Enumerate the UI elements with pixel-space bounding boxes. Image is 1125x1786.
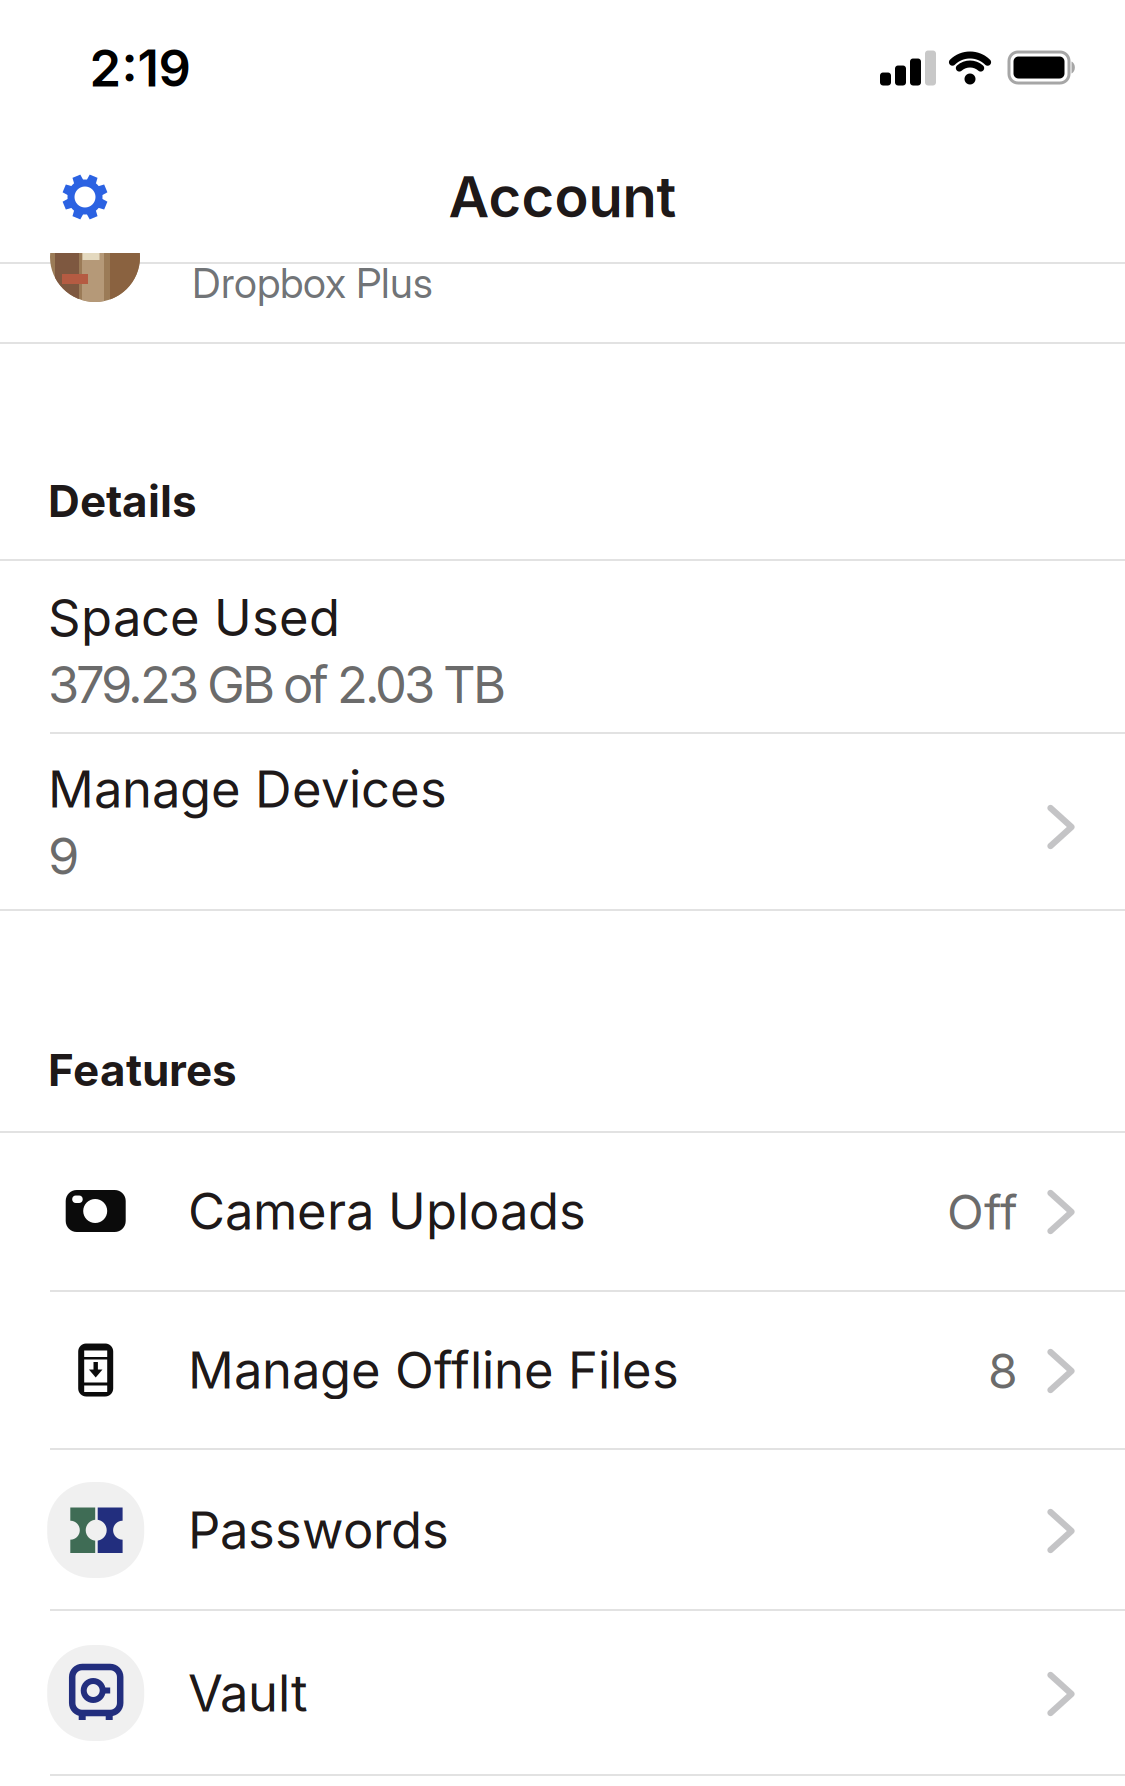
staticText: Space Used	[48, 588, 340, 647]
staticText: Camera Uploads	[188, 1181, 586, 1241]
staticText: Dropbox Plus	[192, 259, 433, 307]
staticText: Manage Devices	[48, 759, 447, 819]
staticText: Manage Offline Files	[188, 1340, 679, 1400]
button[interactable]: Settings	[45, 157, 125, 237]
staticText: Details	[48, 475, 197, 527]
staticText: Features	[48, 1044, 237, 1096]
button[interactable]: Dropbox Plus	[0, 243, 1125, 323]
staticText: 8	[988, 1343, 1018, 1399]
staticText: Passwords	[188, 1500, 449, 1560]
staticText: 9	[48, 826, 79, 886]
staticText: 379.23 GB of 2.03 TB	[48, 655, 506, 714]
staticText: Off	[947, 1184, 1018, 1240]
button[interactable]: Manage Offline Files	[0, 1292, 1125, 1450]
button[interactable]: Space Used	[0, 560, 1125, 732]
staticText: 2:19	[89, 38, 190, 98]
button[interactable]: Vault	[0, 1615, 1125, 1773]
button[interactable]: Camera Uploads	[0, 1133, 1125, 1291]
staticText: Vault	[188, 1663, 308, 1723]
button[interactable]: Passwords	[0, 1452, 1125, 1610]
staticText: Account	[448, 164, 676, 230]
button[interactable]: Manage Devices	[0, 733, 1125, 910]
